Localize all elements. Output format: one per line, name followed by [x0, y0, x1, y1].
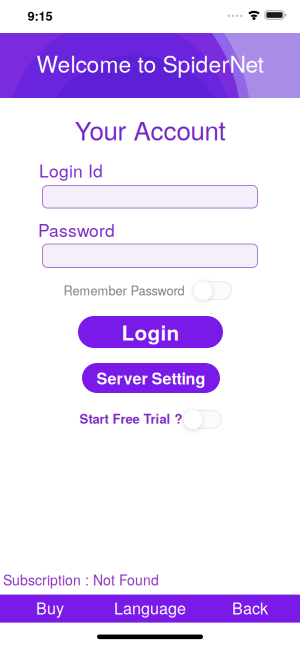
button[interactable]: Server Setting	[82, 363, 220, 393]
staticText: Welcome to SpiderNet	[36, 47, 263, 79]
button[interactable]: Remember Password	[193, 281, 232, 300]
staticText: Password	[38, 217, 115, 242]
staticText: Buy	[36, 596, 64, 619]
staticText: Server Setting	[96, 366, 205, 389]
staticText: Remember Password	[63, 281, 184, 299]
button[interactable]: Start Free Trial	[183, 410, 222, 429]
button[interactable]: Back	[200, 596, 300, 622]
button[interactable]: Login Id	[42, 185, 258, 208]
staticText: Your Account	[74, 111, 225, 148]
button[interactable]: Buy	[0, 596, 100, 622]
button[interactable]: Password	[42, 243, 258, 268]
staticText: Back	[232, 596, 268, 619]
staticText: Subscription : Not Found	[3, 570, 159, 589]
staticText: Login Id	[39, 158, 103, 182]
staticText: Login	[121, 317, 179, 347]
button[interactable]: Login	[78, 316, 223, 348]
button[interactable]: Language	[100, 596, 200, 622]
staticText: Language	[114, 596, 186, 619]
staticText: 9:15	[27, 6, 52, 24]
staticText: Start Free Trial ?	[79, 409, 182, 428]
